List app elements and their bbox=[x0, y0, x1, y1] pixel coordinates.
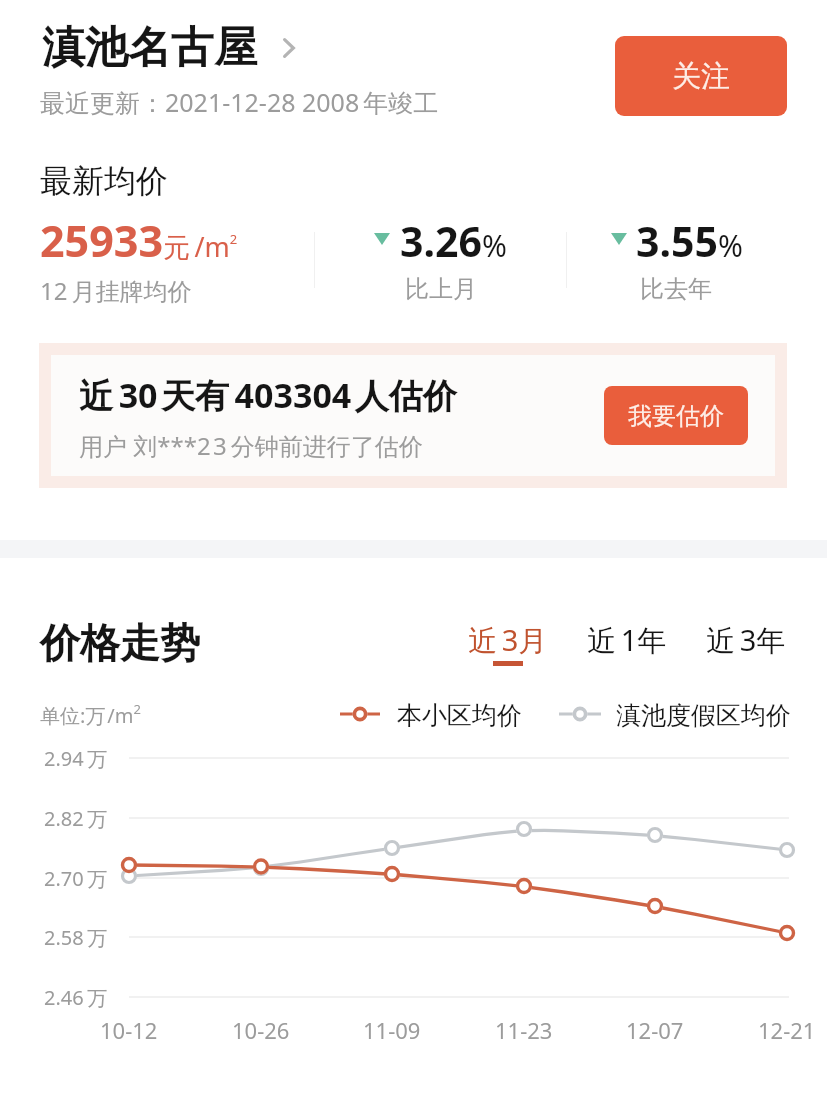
staticText: 单位:万 /m2 bbox=[40, 700, 141, 728]
staticText: 10-26 bbox=[232, 1015, 290, 1045]
button[interactable]: 近 3月 bbox=[454, 608, 555, 666]
other: Open community detail bbox=[283, 38, 295, 58]
staticText: 近 3年 bbox=[706, 620, 786, 660]
staticText: 2.70 万 bbox=[44, 865, 107, 892]
staticText: 3.55% bbox=[636, 213, 743, 269]
staticText: 近 3月 bbox=[468, 620, 548, 660]
staticText: 12-21 bbox=[758, 1015, 816, 1045]
button[interactable]: 关注 bbox=[615, 36, 787, 116]
staticText: 最近更新：2021-12-28 2008 年竣工 bbox=[40, 85, 439, 119]
staticText: 3.26% bbox=[400, 213, 507, 269]
staticText: 关注 bbox=[672, 58, 730, 95]
staticText: 2.82 万 bbox=[44, 805, 107, 832]
staticText: 我要估价 bbox=[628, 401, 724, 431]
staticText: 比上月 bbox=[405, 274, 477, 304]
staticText: 近 1年 bbox=[587, 620, 667, 660]
staticText: 12-07 bbox=[626, 1015, 684, 1045]
staticText: 本小区均价 bbox=[397, 700, 522, 731]
staticText: 滇池度假区均价 bbox=[616, 700, 791, 731]
staticText: 25933元 /m2 bbox=[40, 211, 238, 270]
button[interactable]: 近 1年 bbox=[573, 608, 675, 666]
staticText: 2.58 万 bbox=[44, 924, 107, 951]
button[interactable]: 近 30 天有 403304 人估价 bbox=[39, 343, 787, 488]
button[interactable]: 我要估价 bbox=[604, 386, 748, 445]
staticText: 用户 刘***2 3 分钟前进行了估价 bbox=[79, 429, 423, 462]
button[interactable]: 近 3年 bbox=[692, 608, 798, 666]
staticText: 2.46 万 bbox=[44, 984, 107, 1011]
staticText: 12 月挂牌均价 bbox=[40, 274, 192, 307]
staticText: 最新均价 bbox=[40, 161, 168, 201]
staticText: 比去年 bbox=[640, 274, 712, 304]
button[interactable]: 滇池名古屋 bbox=[42, 21, 295, 75]
staticText: 11-09 bbox=[363, 1015, 421, 1045]
staticText: 近 30 天有 403304 人估价 bbox=[79, 372, 457, 418]
staticText: 2.94 万 bbox=[44, 745, 107, 772]
staticText: 11-23 bbox=[495, 1015, 553, 1045]
staticText: 10-12 bbox=[100, 1015, 158, 1045]
staticText: 滇池名古屋 bbox=[42, 21, 257, 75]
staticText: 价格走势 bbox=[40, 618, 200, 668]
